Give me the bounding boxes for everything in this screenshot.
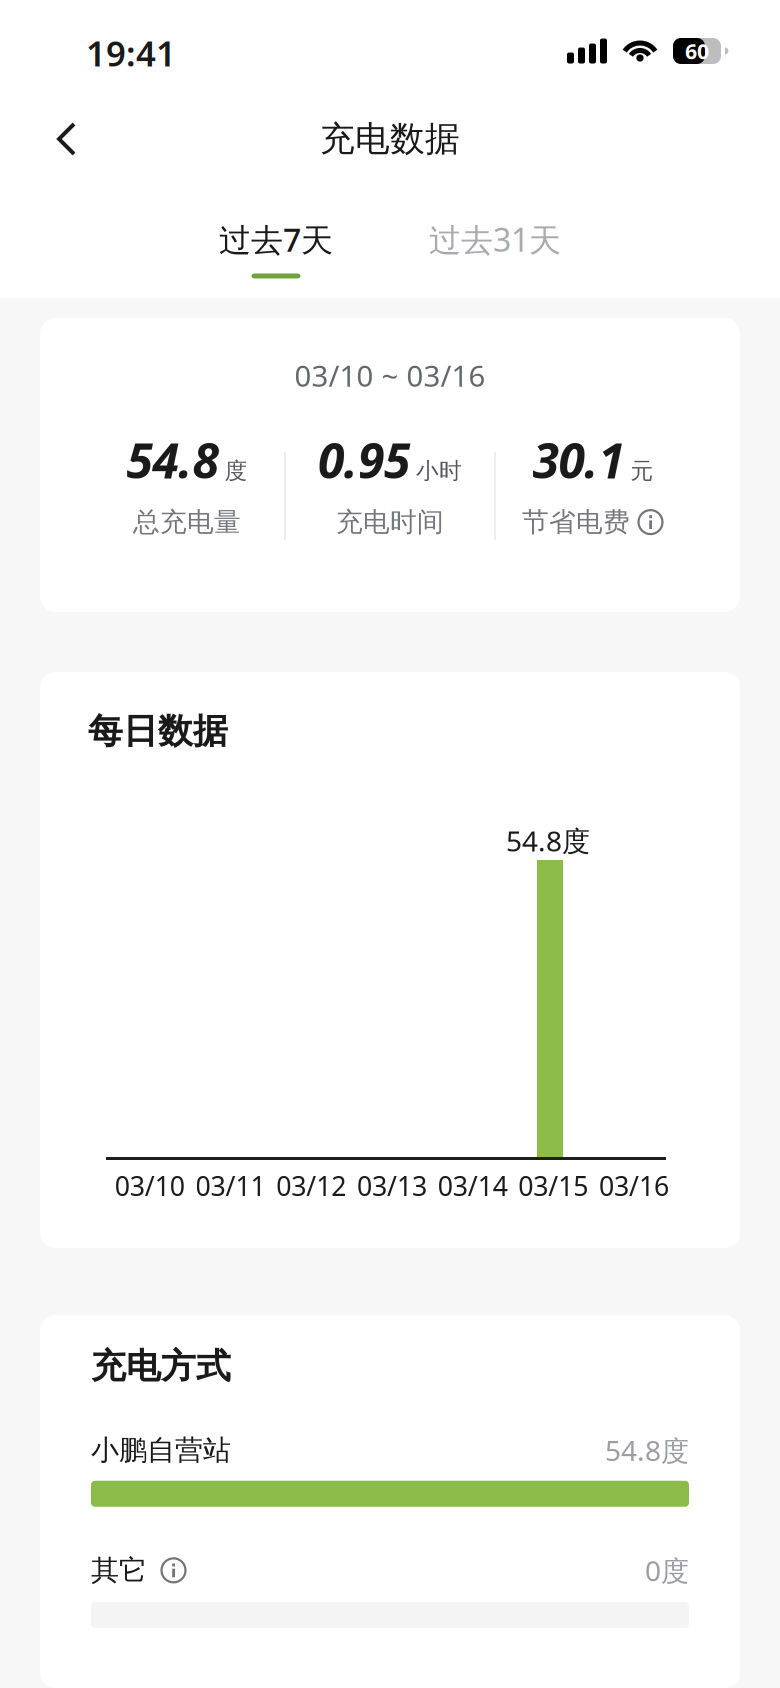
staticText: 03/12 <box>276 1168 346 1203</box>
staticText: 03/16 <box>599 1168 669 1203</box>
staticText: 充电时间 <box>336 506 444 538</box>
button[interactable]: About other charging <box>160 1557 187 1584</box>
button[interactable]: 过去7天 <box>219 218 333 278</box>
staticText: 0度 <box>645 1552 689 1589</box>
staticText: 30.1 <box>532 428 624 492</box>
staticText: 03/15 <box>518 1168 588 1203</box>
staticText: 总充电量 <box>133 506 241 538</box>
staticText: 充电数据 <box>320 118 460 160</box>
staticText: 03/14 <box>438 1168 508 1203</box>
staticText: 充电方式 <box>91 1345 231 1388</box>
staticText: 过去31天 <box>429 218 561 260</box>
button[interactable]: 过去31天 <box>429 218 561 260</box>
staticText: 19:41 <box>86 30 176 76</box>
staticText: 节省电费 <box>522 506 630 538</box>
button[interactable]: About saved cost <box>637 509 664 536</box>
staticText: 0.95 <box>318 428 410 492</box>
staticText: 过去7天 <box>219 218 333 260</box>
staticText: 其它 <box>91 1553 147 1588</box>
staticText: 54.8度 <box>506 822 590 859</box>
staticText: 03/13 <box>357 1168 427 1203</box>
staticText: 小鹏自营站 <box>91 1433 231 1467</box>
staticText: 小时 <box>416 457 462 485</box>
staticText: 60 <box>685 37 709 65</box>
staticText: 03/11 <box>195 1168 265 1203</box>
staticText: 元 <box>630 457 653 485</box>
staticText: 03/10 <box>115 1168 185 1203</box>
staticText: 54.8度 <box>605 1432 689 1469</box>
button[interactable]: Back <box>0 101 78 177</box>
staticText: 54.8 <box>126 428 218 492</box>
staticText: 每日数据 <box>88 710 228 753</box>
staticText: 03/10 ~ 03/16 <box>294 356 485 395</box>
staticText: 度 <box>224 457 247 485</box>
